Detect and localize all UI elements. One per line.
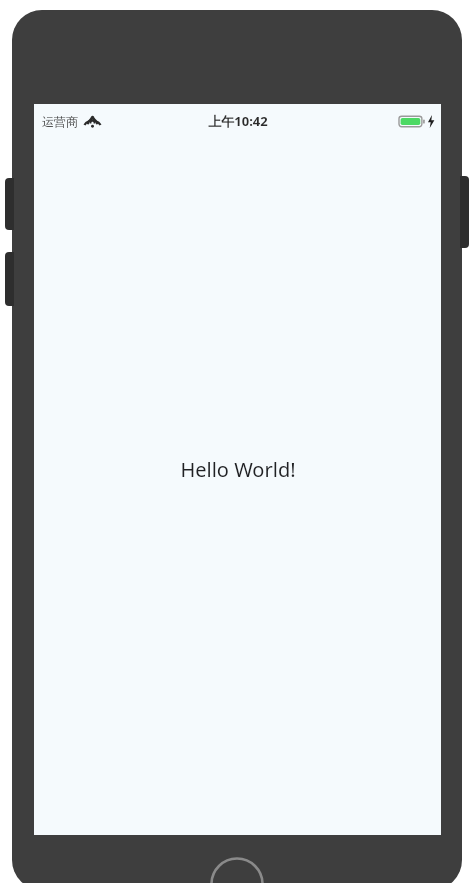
button[interactable]: Home — [210, 857, 264, 883]
staticText: 上午10:42 — [208, 112, 268, 130]
button[interactable]: Volume up — [5, 178, 14, 230]
button[interactable]: Hello World! — [180, 456, 296, 483]
staticText: 运营商 — [42, 114, 78, 129]
button[interactable]: Power — [460, 176, 469, 248]
button[interactable]: Volume down — [5, 252, 14, 306]
staticText: Hello World! — [180, 456, 296, 483]
